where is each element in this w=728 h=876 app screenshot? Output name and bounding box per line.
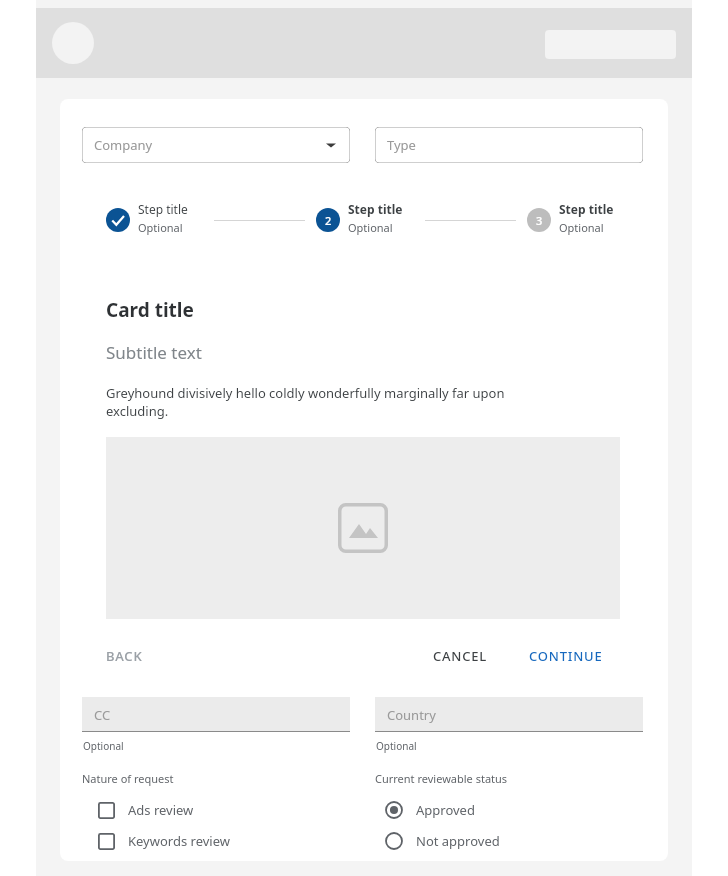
staticText: Optional [376,739,417,753]
button[interactable]: CONTINUE [529,642,603,670]
staticText: Optional [138,220,183,235]
staticText: Keywords review [128,832,230,850]
staticText: BACK [106,647,143,665]
staticText: 2 [325,213,332,228]
staticText: Optional [348,220,393,235]
button[interactable]: Step 2 [316,208,340,232]
button[interactable]: Keywords review [98,828,230,854]
button[interactable]: CANCEL [433,642,488,670]
staticText: Not approved [416,832,500,850]
staticText: 3 [536,213,543,228]
staticText: Optional [83,739,124,753]
staticText: CANCEL [433,647,488,665]
button[interactable]: Company [82,127,350,163]
staticText: Type [387,136,416,154]
button[interactable]: Type [375,127,643,163]
staticText: Subtitle text [106,341,202,364]
staticText: Company [94,136,153,154]
staticText: Approved [416,801,475,819]
staticText: Ads review [128,801,194,819]
button[interactable]: Approved [385,797,475,823]
button[interactable]: BACK [106,642,143,670]
button[interactable]: Ads review [98,797,194,823]
button[interactable]: Image placeholder [106,437,620,619]
staticText: CONTINUE [529,647,603,665]
button[interactable]: CC [82,697,350,732]
staticText: Greyhound divisively hello coldly wonder… [106,384,505,420]
staticText: Country [387,706,436,724]
button[interactable]: Step 3 [527,208,551,232]
staticText: Nature of request [82,771,174,786]
staticText: Current reviewable status [375,771,508,786]
staticText: Step title [559,201,614,217]
staticText: Card title [106,297,194,323]
button[interactable]: Account [52,22,94,64]
button[interactable]: Country [375,697,643,732]
staticText: Step title [138,201,188,217]
button[interactable]: Step 1 complete [106,208,130,232]
staticText: Optional [559,220,604,235]
button[interactable]: Not approved [385,828,500,854]
staticText: Step title [348,201,403,217]
staticText: CC [94,706,111,724]
